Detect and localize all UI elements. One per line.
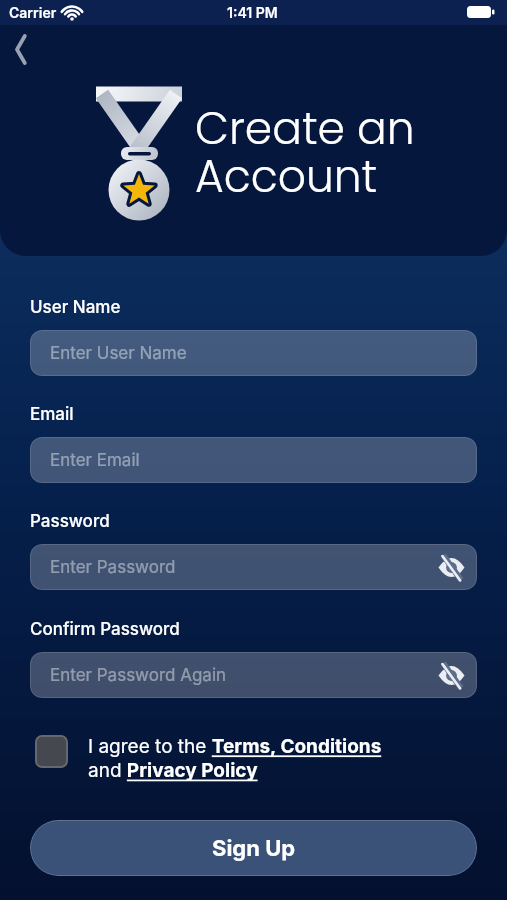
button[interactable] (35, 735, 68, 768)
staticText: Sign Up (212, 835, 296, 862)
staticText: 1:41 PM (227, 4, 278, 21)
staticText: User Name (30, 297, 121, 318)
staticText: Enter Email (50, 450, 140, 471)
staticText: Enter User Name (50, 343, 187, 364)
staticText: Carrier (9, 4, 57, 21)
staticText: Password (30, 511, 110, 532)
staticText: Enter Password (50, 557, 176, 578)
button[interactable]: Enter Email (30, 437, 477, 483)
staticText: Create an Account (195, 98, 415, 208)
button[interactable]: I agree to the Terms, Conditions and Pri… (88, 735, 382, 782)
button[interactable]: Enter Password Again (30, 652, 477, 698)
staticText: Email (30, 404, 74, 425)
button[interactable] (435, 551, 467, 583)
staticText: Enter Password Again (50, 665, 227, 686)
button[interactable]: Enter Password (30, 544, 477, 590)
button[interactable]: Sign Up (30, 820, 477, 876)
button[interactable] (4, 32, 38, 66)
staticText: Confirm Password (30, 619, 180, 640)
button[interactable] (435, 659, 467, 691)
button[interactable]: Enter User Name (30, 330, 477, 376)
